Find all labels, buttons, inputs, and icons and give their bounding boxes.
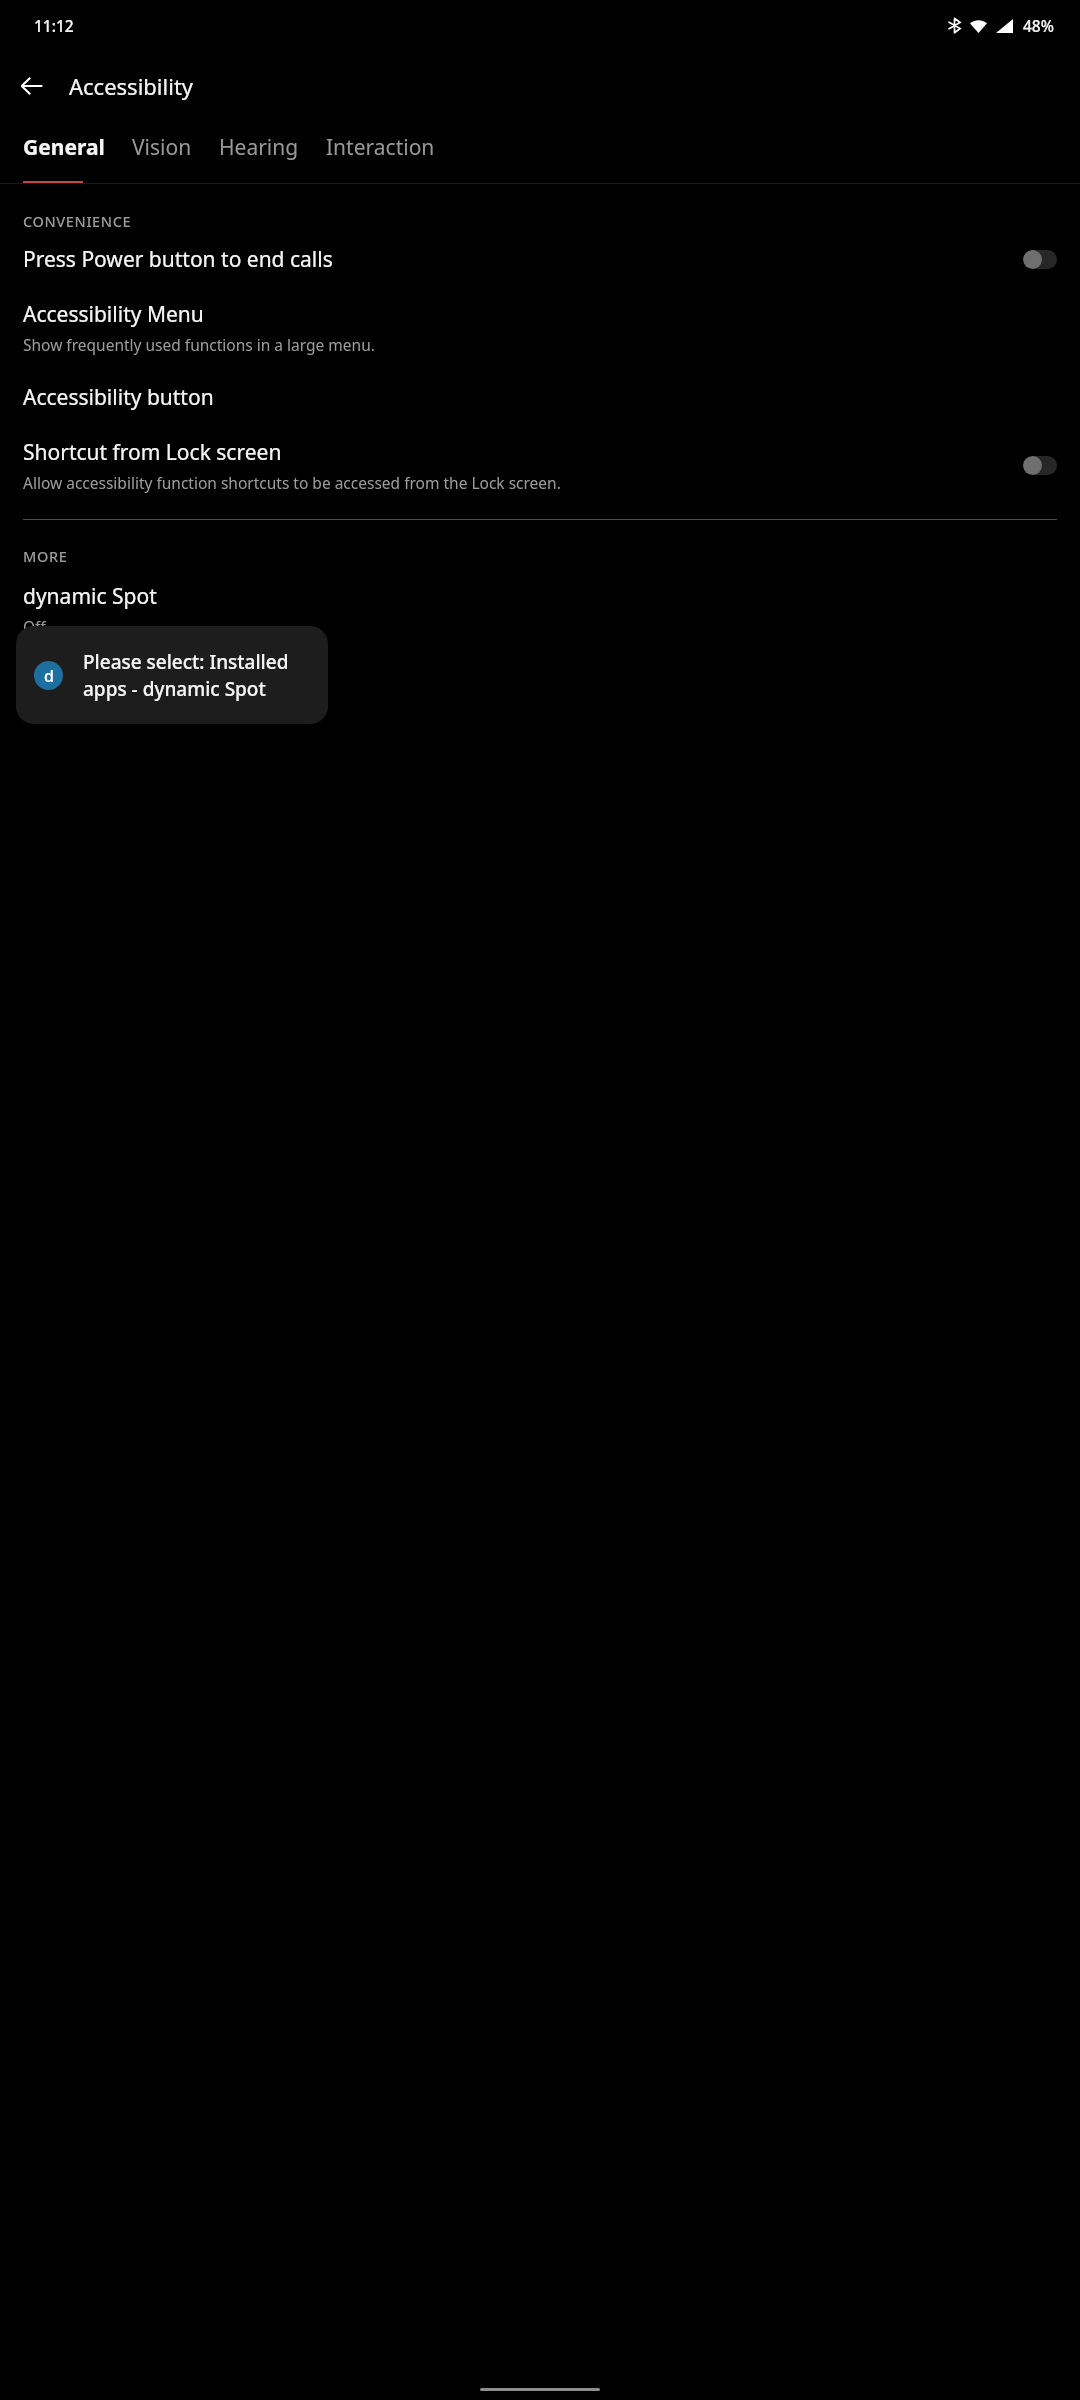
- button[interactable]: Hearing: [219, 122, 299, 184]
- staticText: Allow accessibility function shortcuts t…: [23, 472, 561, 493]
- button[interactable]: Toggle: [1023, 456, 1057, 475]
- staticText: d: [44, 665, 54, 687]
- staticText: Accessibility Menu: [23, 300, 204, 329]
- staticText: CONVENIENCE: [23, 211, 132, 231]
- button[interactable]: Toggle: [1023, 250, 1057, 269]
- staticText: Show frequently used functions in a larg…: [23, 334, 375, 355]
- staticText: Accessibility button: [23, 383, 214, 412]
- staticText: Press Power button to end calls: [23, 245, 333, 274]
- staticText: Vision: [132, 133, 192, 162]
- button[interactable]: Accessibility Menu: [0, 298, 1080, 357]
- button[interactable]: Press Power button to end calls: [0, 245, 1080, 274]
- staticText: 11:12: [34, 15, 74, 36]
- staticText: Off: [23, 616, 46, 637]
- staticText: Please select: Installed apps - dynamic …: [83, 649, 310, 702]
- staticText: Shortcut from Lock screen: [23, 438, 282, 467]
- button[interactable]: d: [16, 626, 328, 724]
- staticText: dynamic Spot: [23, 582, 157, 611]
- button[interactable]: Accessibility button: [0, 381, 1080, 414]
- button[interactable]: Interaction: [326, 122, 435, 184]
- staticText: General: [23, 133, 105, 162]
- button[interactable]: Vision: [132, 122, 192, 184]
- button[interactable]: Back: [8, 62, 56, 110]
- staticText: MORE: [23, 546, 68, 566]
- staticText: Accessibility: [69, 71, 194, 101]
- staticText: 48%: [1023, 15, 1054, 36]
- staticText: Interaction: [326, 133, 435, 162]
- staticText: Hearing: [219, 133, 299, 162]
- button[interactable]: Shortcut from Lock screen: [0, 438, 1080, 493]
- button[interactable]: dynamic Spot: [0, 580, 1080, 639]
- button[interactable]: General: [23, 122, 105, 184]
